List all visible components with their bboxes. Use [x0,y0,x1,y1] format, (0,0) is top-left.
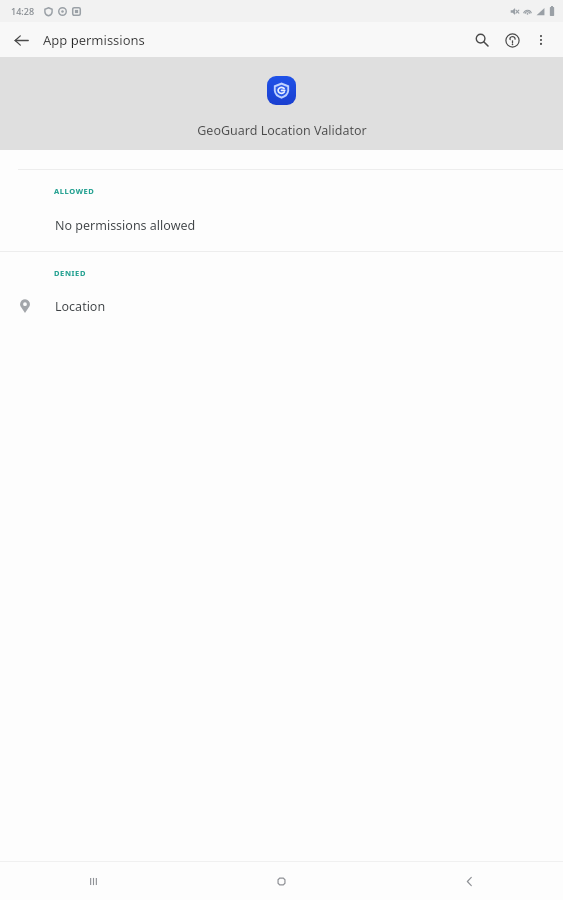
staticText: GeoGuard Location Validator [197,122,367,139]
staticText: ALLOWED [54,186,95,196]
staticText: App permissions [43,31,145,49]
button[interactable]: Help [497,25,527,55]
staticText: 14:28 [11,5,35,17]
button[interactable]: Search [467,25,497,55]
button[interactable]: More options [527,26,555,54]
staticText: No permissions allowed [55,217,196,234]
button[interactable]: Back [8,27,34,53]
staticText: DENIED [54,268,86,278]
button[interactable]: Back [375,862,563,900]
button[interactable]: No permissions allowed [0,210,563,240]
button[interactable]: Recent apps [0,862,187,900]
button[interactable]: Home [187,862,375,900]
staticText: Location [55,298,106,315]
button[interactable]: Location [0,290,563,322]
